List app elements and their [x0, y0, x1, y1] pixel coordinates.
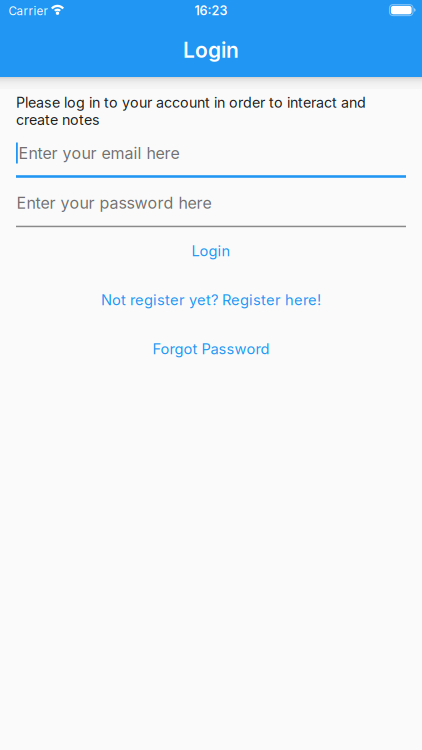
button[interactable]: Forgot Password — [144, 331, 277, 367]
staticText: 16:23 — [194, 3, 227, 18]
staticText: Carrier — [8, 4, 47, 18]
staticText: Login — [183, 37, 239, 63]
staticText: Not register yet? Register here! — [101, 291, 321, 309]
staticText: Forgot Password — [152, 340, 269, 358]
button[interactable]: Login — [183, 233, 238, 269]
staticText: Login — [191, 242, 230, 260]
button[interactable]: Password — [16, 193, 406, 227]
button[interactable]: Not register yet? Register here! — [93, 282, 329, 318]
staticText: Enter your password here — [16, 193, 211, 213]
button[interactable]: Email — [16, 142, 406, 178]
staticText: Please log in to your account in order t… — [16, 94, 366, 128]
staticText: Enter your email here — [18, 143, 179, 163]
